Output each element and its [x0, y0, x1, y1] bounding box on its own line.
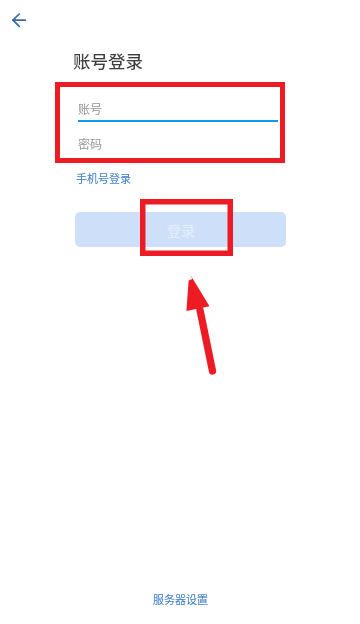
- button[interactable]: 登录: [75, 212, 286, 247]
- staticText: 登录: [167, 220, 195, 240]
- staticText: 密码: [78, 135, 103, 152]
- staticText: 账号登录: [73, 48, 143, 73]
- button[interactable]: Back: [6, 8, 33, 35]
- button[interactable]: 服务器设置: [153, 591, 208, 607]
- staticText: 手机号登录: [76, 170, 131, 186]
- button[interactable]: 手机号登录: [76, 170, 131, 186]
- staticText: 账号: [78, 100, 103, 117]
- staticText: 服务器设置: [153, 591, 208, 607]
